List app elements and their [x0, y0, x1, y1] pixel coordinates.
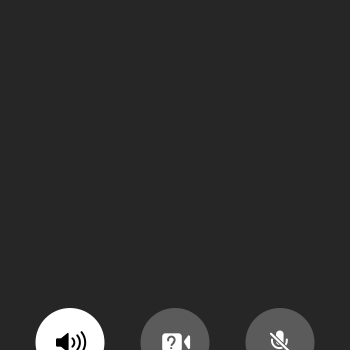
button[interactable]: Speaker	[35, 308, 104, 350]
button[interactable]: Video	[140, 308, 209, 350]
button[interactable]: Mute	[245, 308, 314, 350]
